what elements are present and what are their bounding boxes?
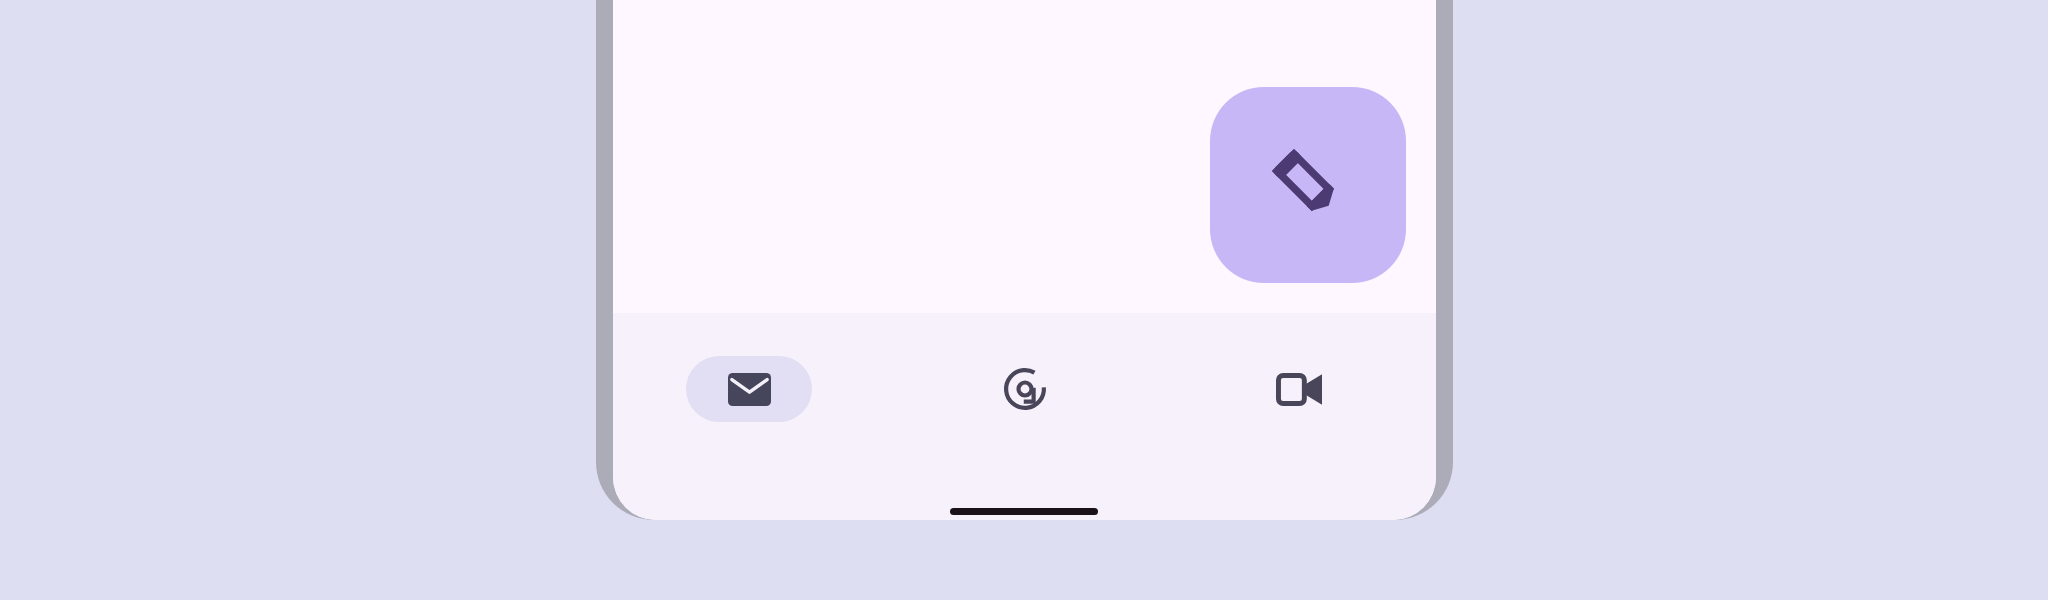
button[interactable]: Mail (659, 336, 839, 440)
button[interactable]: Video calls (1209, 336, 1389, 440)
button[interactable]: Compose (1210, 87, 1406, 283)
button[interactable]: Mentions (935, 336, 1115, 440)
